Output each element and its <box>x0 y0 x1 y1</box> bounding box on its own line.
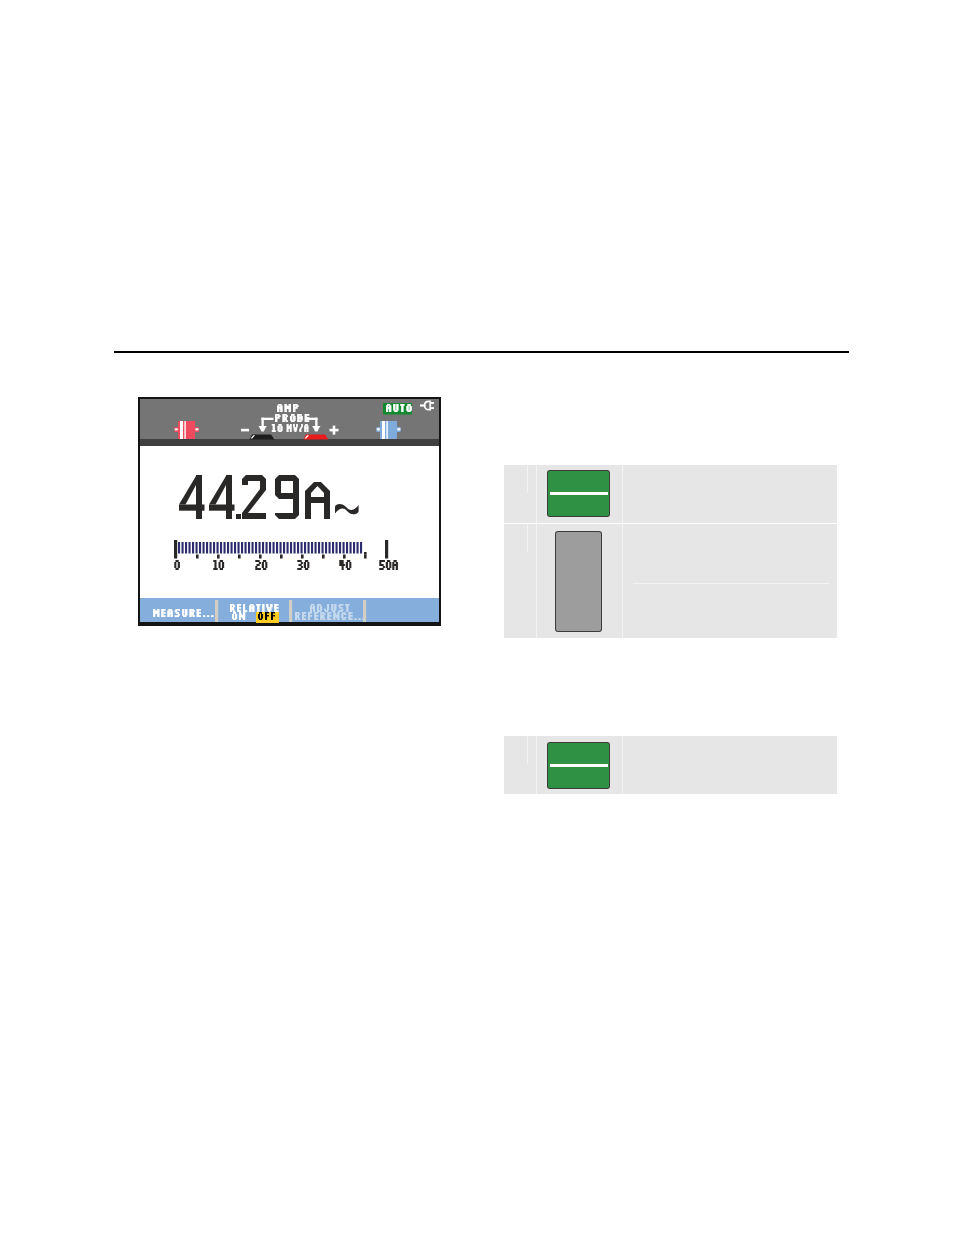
button[interactable]: Green key <box>547 742 610 789</box>
staticText: 10 <box>271 419 284 436</box>
staticText: mV/A <box>286 419 309 436</box>
staticText: OFF <box>257 607 276 624</box>
button[interactable]: Green key <box>547 470 610 517</box>
staticText: ON <box>231 607 246 624</box>
button[interactable] <box>504 736 837 794</box>
staticText: ADJUST <box>309 599 350 616</box>
staticText: RELATIVE <box>229 599 280 616</box>
staticText: MEASURE... <box>152 604 215 621</box>
staticText: 0 <box>173 555 180 574</box>
staticText: 20 <box>254 555 268 574</box>
staticText: 40 <box>338 555 352 574</box>
button[interactable] <box>504 465 837 523</box>
staticText: 10 <box>212 555 224 574</box>
staticText: AMP <box>276 399 300 416</box>
staticText: 50A <box>378 555 398 574</box>
staticText: AUTO <box>385 399 413 416</box>
staticText: REFERENCE... <box>294 607 366 624</box>
button[interactable]: Probe key <box>555 531 602 632</box>
staticText: 30 <box>296 555 310 574</box>
button[interactable] <box>504 524 837 638</box>
staticText: PROBE <box>274 409 311 426</box>
